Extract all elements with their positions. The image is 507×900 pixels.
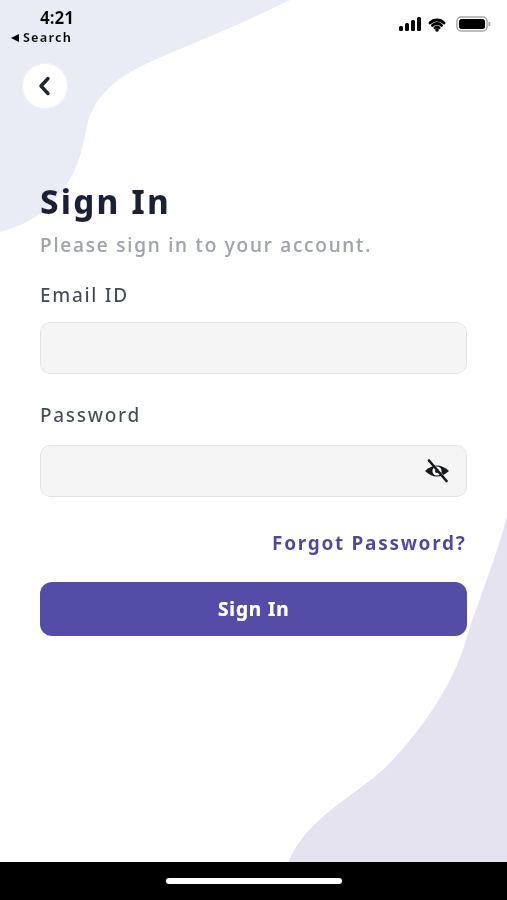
button[interactable] (40, 322, 467, 374)
staticText: Email ID (40, 282, 129, 308)
button[interactable]: Sign In (40, 582, 467, 636)
staticText: Password (40, 402, 141, 428)
staticText: 4:21 (40, 6, 74, 29)
button[interactable] (40, 445, 467, 497)
button[interactable] (22, 63, 68, 109)
button[interactable]: Forgot Password? (272, 530, 467, 556)
staticText: Search (23, 29, 72, 46)
staticText: Please sign in to your account. (40, 232, 373, 258)
staticText: Sign In (218, 596, 290, 622)
staticText: Sign In (40, 179, 171, 224)
